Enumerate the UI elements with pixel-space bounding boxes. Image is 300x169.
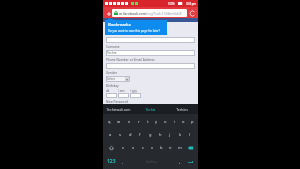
staticText: l bbox=[189, 132, 191, 137]
button[interactable]: z bbox=[118, 141, 128, 154]
button[interactable]: l bbox=[185, 128, 195, 140]
button[interactable]: 123 bbox=[104, 155, 118, 168]
button[interactable]: a bbox=[106, 128, 115, 140]
staticText: Surname bbox=[106, 45, 120, 49]
staticText: c bbox=[142, 145, 144, 150]
staticText: m bbox=[178, 145, 182, 150]
staticText: e bbox=[128, 119, 131, 124]
staticText: x bbox=[132, 145, 135, 150]
button[interactable] bbox=[130, 93, 141, 98]
button[interactable]: k bbox=[175, 128, 185, 140]
staticText: 123 bbox=[107, 158, 116, 165]
staticText: Birthday bbox=[106, 84, 119, 88]
button[interactable] bbox=[118, 93, 129, 98]
button[interactable]: e bbox=[124, 115, 134, 127]
staticText: Do you want to save this page for later? bbox=[108, 29, 160, 33]
button[interactable]: Shift bbox=[104, 141, 118, 154]
staticText: p bbox=[191, 119, 194, 124]
button[interactable]: Backspace bbox=[184, 141, 197, 154]
button[interactable]: j bbox=[165, 128, 175, 140]
staticText: 100% bbox=[168, 2, 175, 6]
button[interactable]: Period bbox=[175, 155, 184, 168]
staticText: 3:05 pm bbox=[186, 2, 196, 6]
staticText: j bbox=[169, 132, 171, 137]
button[interactable]: x bbox=[128, 141, 138, 154]
staticText: w bbox=[117, 119, 121, 124]
staticText: b bbox=[160, 145, 163, 150]
staticText: Select bbox=[107, 77, 116, 81]
button[interactable]: t bbox=[143, 115, 152, 127]
staticText: Techiewali.com bbox=[106, 107, 131, 112]
button[interactable]: s bbox=[115, 128, 125, 140]
staticText: Gender bbox=[106, 71, 118, 75]
staticText: g bbox=[149, 132, 152, 137]
button[interactable] bbox=[106, 37, 195, 43]
button[interactable]: d bbox=[125, 128, 135, 140]
staticText: i bbox=[174, 119, 176, 124]
button[interactable]: w bbox=[114, 115, 124, 127]
staticText: y bbox=[155, 119, 158, 124]
staticText: q bbox=[108, 119, 111, 124]
button[interactable]: i bbox=[170, 115, 179, 127]
button[interactable]: u bbox=[161, 115, 170, 127]
button[interactable]: New tab bbox=[105, 10, 112, 17]
staticText: s bbox=[119, 132, 121, 137]
staticText: , bbox=[122, 159, 124, 164]
button[interactable]: b bbox=[157, 141, 166, 154]
button[interactable]: q bbox=[104, 115, 114, 127]
staticText: d bbox=[129, 132, 132, 137]
button[interactable]: n bbox=[166, 141, 175, 154]
button[interactable]: Enter bbox=[184, 155, 197, 168]
staticText: o bbox=[182, 119, 185, 124]
staticText: k bbox=[179, 132, 182, 137]
button[interactable]: , bbox=[118, 155, 128, 168]
button[interactable]: m bbox=[175, 141, 184, 154]
staticText: n bbox=[169, 145, 172, 150]
button[interactable]: Bookmarks bbox=[105, 18, 167, 35]
button[interactable]: h bbox=[155, 128, 165, 140]
button[interactable]: r bbox=[134, 115, 143, 127]
button[interactable]: o bbox=[179, 115, 188, 127]
staticText: Swiftkey bbox=[146, 160, 157, 164]
staticText: Techie bbox=[107, 51, 117, 55]
staticText: New Password bbox=[106, 100, 128, 103]
staticText: / mm bbox=[118, 89, 125, 93]
button[interactable]: Techie bbox=[106, 50, 195, 56]
button[interactable]: Techiewali.com bbox=[103, 104, 134, 114]
staticText: dd bbox=[106, 89, 110, 93]
staticText: Techie bbox=[145, 107, 156, 112]
staticText: /reg/?cid=103&refid=8 bbox=[146, 11, 182, 16]
staticText: u bbox=[164, 119, 167, 124]
staticText: f bbox=[139, 132, 141, 137]
staticText: Email bbox=[106, 32, 115, 36]
staticText: r bbox=[138, 119, 140, 124]
button[interactable]: y bbox=[152, 115, 161, 127]
staticText: a bbox=[109, 132, 112, 137]
staticText: h bbox=[159, 132, 162, 137]
button[interactable]: Select bbox=[106, 76, 130, 82]
button[interactable]: p bbox=[188, 115, 197, 127]
staticText: Bookmarks bbox=[108, 22, 131, 28]
staticText: v bbox=[151, 145, 154, 150]
staticText: / yyyy bbox=[130, 89, 137, 93]
button[interactable]: Techies bbox=[166, 104, 198, 114]
button[interactable]: Reload bbox=[189, 10, 196, 17]
staticText: t bbox=[147, 119, 149, 124]
button[interactable]: g bbox=[145, 128, 155, 140]
button[interactable]: f bbox=[135, 128, 145, 140]
button[interactable]: v bbox=[148, 141, 157, 154]
staticText: m.facebook.com bbox=[119, 11, 146, 16]
staticText: Techies bbox=[176, 107, 188, 112]
staticText: z bbox=[122, 145, 124, 150]
button[interactable]: c bbox=[138, 141, 148, 154]
button[interactable] bbox=[106, 93, 117, 98]
button[interactable] bbox=[106, 63, 195, 69]
button[interactable]: Techie bbox=[134, 104, 166, 114]
button[interactable]: m.facebook.com bbox=[112, 9, 187, 17]
staticText: Phone Number or Email Address bbox=[106, 58, 155, 62]
